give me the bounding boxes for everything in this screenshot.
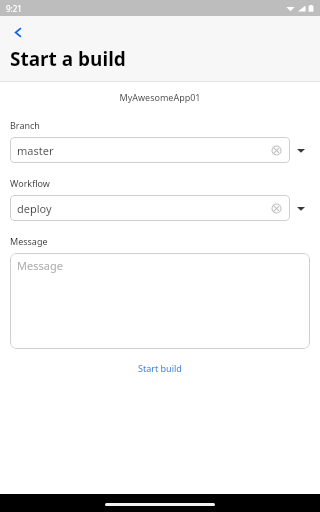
button[interactable]: Clear bbox=[269, 143, 283, 157]
staticText: Start build bbox=[138, 362, 182, 374]
staticText: master bbox=[17, 143, 269, 158]
staticText: Message bbox=[10, 235, 48, 247]
staticText: MyAwesomeApp01 bbox=[0, 91, 320, 103]
staticText: Workflow bbox=[10, 177, 50, 189]
staticText: deploy bbox=[17, 201, 269, 216]
staticText: Branch bbox=[10, 119, 40, 131]
button[interactable]: deploy bbox=[10, 195, 290, 221]
button[interactable]: Open dropdown bbox=[290, 137, 312, 163]
button[interactable]: Back bbox=[4, 18, 32, 46]
staticText: Message bbox=[17, 258, 63, 273]
button[interactable]: master bbox=[10, 137, 290, 163]
button[interactable]: Clear bbox=[269, 201, 283, 215]
button[interactable]: Start build bbox=[0, 359, 320, 377]
staticText: Start a build bbox=[10, 46, 126, 72]
button[interactable]: Open dropdown bbox=[290, 195, 312, 221]
staticText: 9:21 bbox=[6, 3, 22, 14]
button[interactable]: Message bbox=[10, 253, 310, 349]
